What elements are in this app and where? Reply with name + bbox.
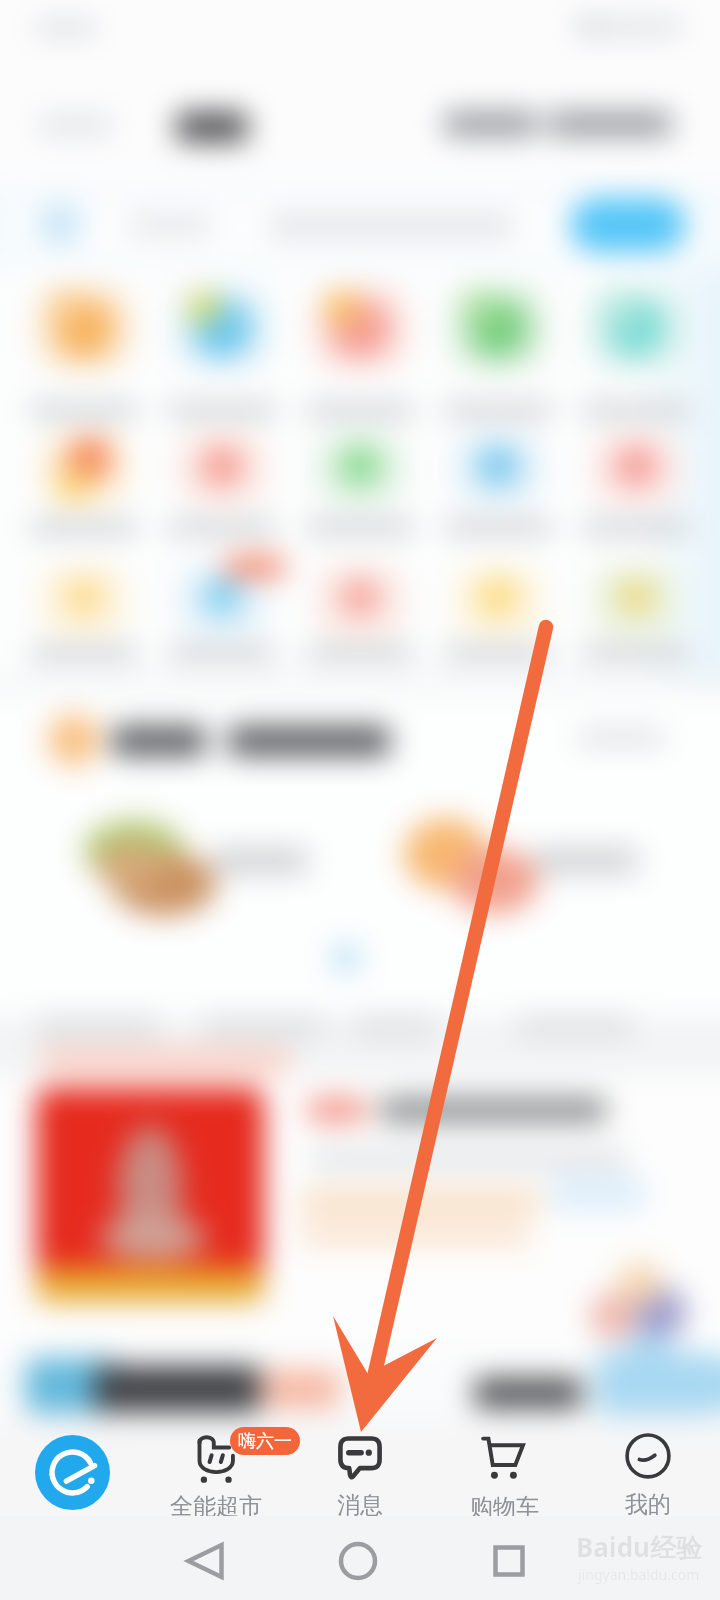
staticText: 购物车 (470, 1493, 539, 1522)
staticText: 嗨六一 (238, 1430, 292, 1453)
staticText: jingyan.baidu.com (578, 1565, 700, 1584)
button[interactable]: Ele.me home (0, 1408, 144, 1483)
staticText: 消息 (337, 1491, 383, 1520)
button[interactable]: 购物车 (432, 1408, 576, 1516)
button[interactable]: Back (169, 1531, 241, 1591)
button[interactable]: 嗨六一 (238, 1427, 292, 1455)
staticText: Baidu经验 (576, 1529, 702, 1565)
staticText: 我的 (625, 1490, 671, 1519)
staticText: 全能超市 (170, 1492, 262, 1521)
button[interactable]: 消息 (288, 1408, 432, 1516)
button[interactable]: 全能超市 (144, 1408, 288, 1516)
button[interactable]: Recent apps (473, 1531, 545, 1591)
button[interactable]: 我的 (576, 1408, 720, 1516)
button[interactable]: Home (322, 1531, 394, 1591)
